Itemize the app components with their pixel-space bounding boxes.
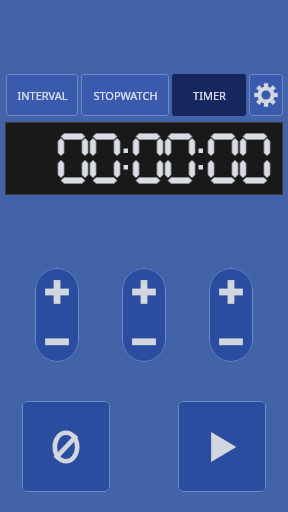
button[interactable]: Reset <box>22 401 110 492</box>
button[interactable]: INTERVAL <box>6 74 78 116</box>
staticText: INTERVAL <box>17 88 68 103</box>
staticText: TIMER <box>193 88 226 103</box>
button[interactable]: Start <box>178 401 266 492</box>
button[interactable]: Increase or decrease <box>35 268 79 362</box>
button[interactable]: TIMER <box>172 74 246 116</box>
button[interactable]: Settings <box>249 74 283 116</box>
button[interactable]: STOPWATCH <box>81 74 169 116</box>
button[interactable]: Increase or decrease <box>209 268 253 362</box>
button[interactable]: Increase or decrease <box>122 268 166 362</box>
staticText: STOPWATCH <box>93 88 158 103</box>
